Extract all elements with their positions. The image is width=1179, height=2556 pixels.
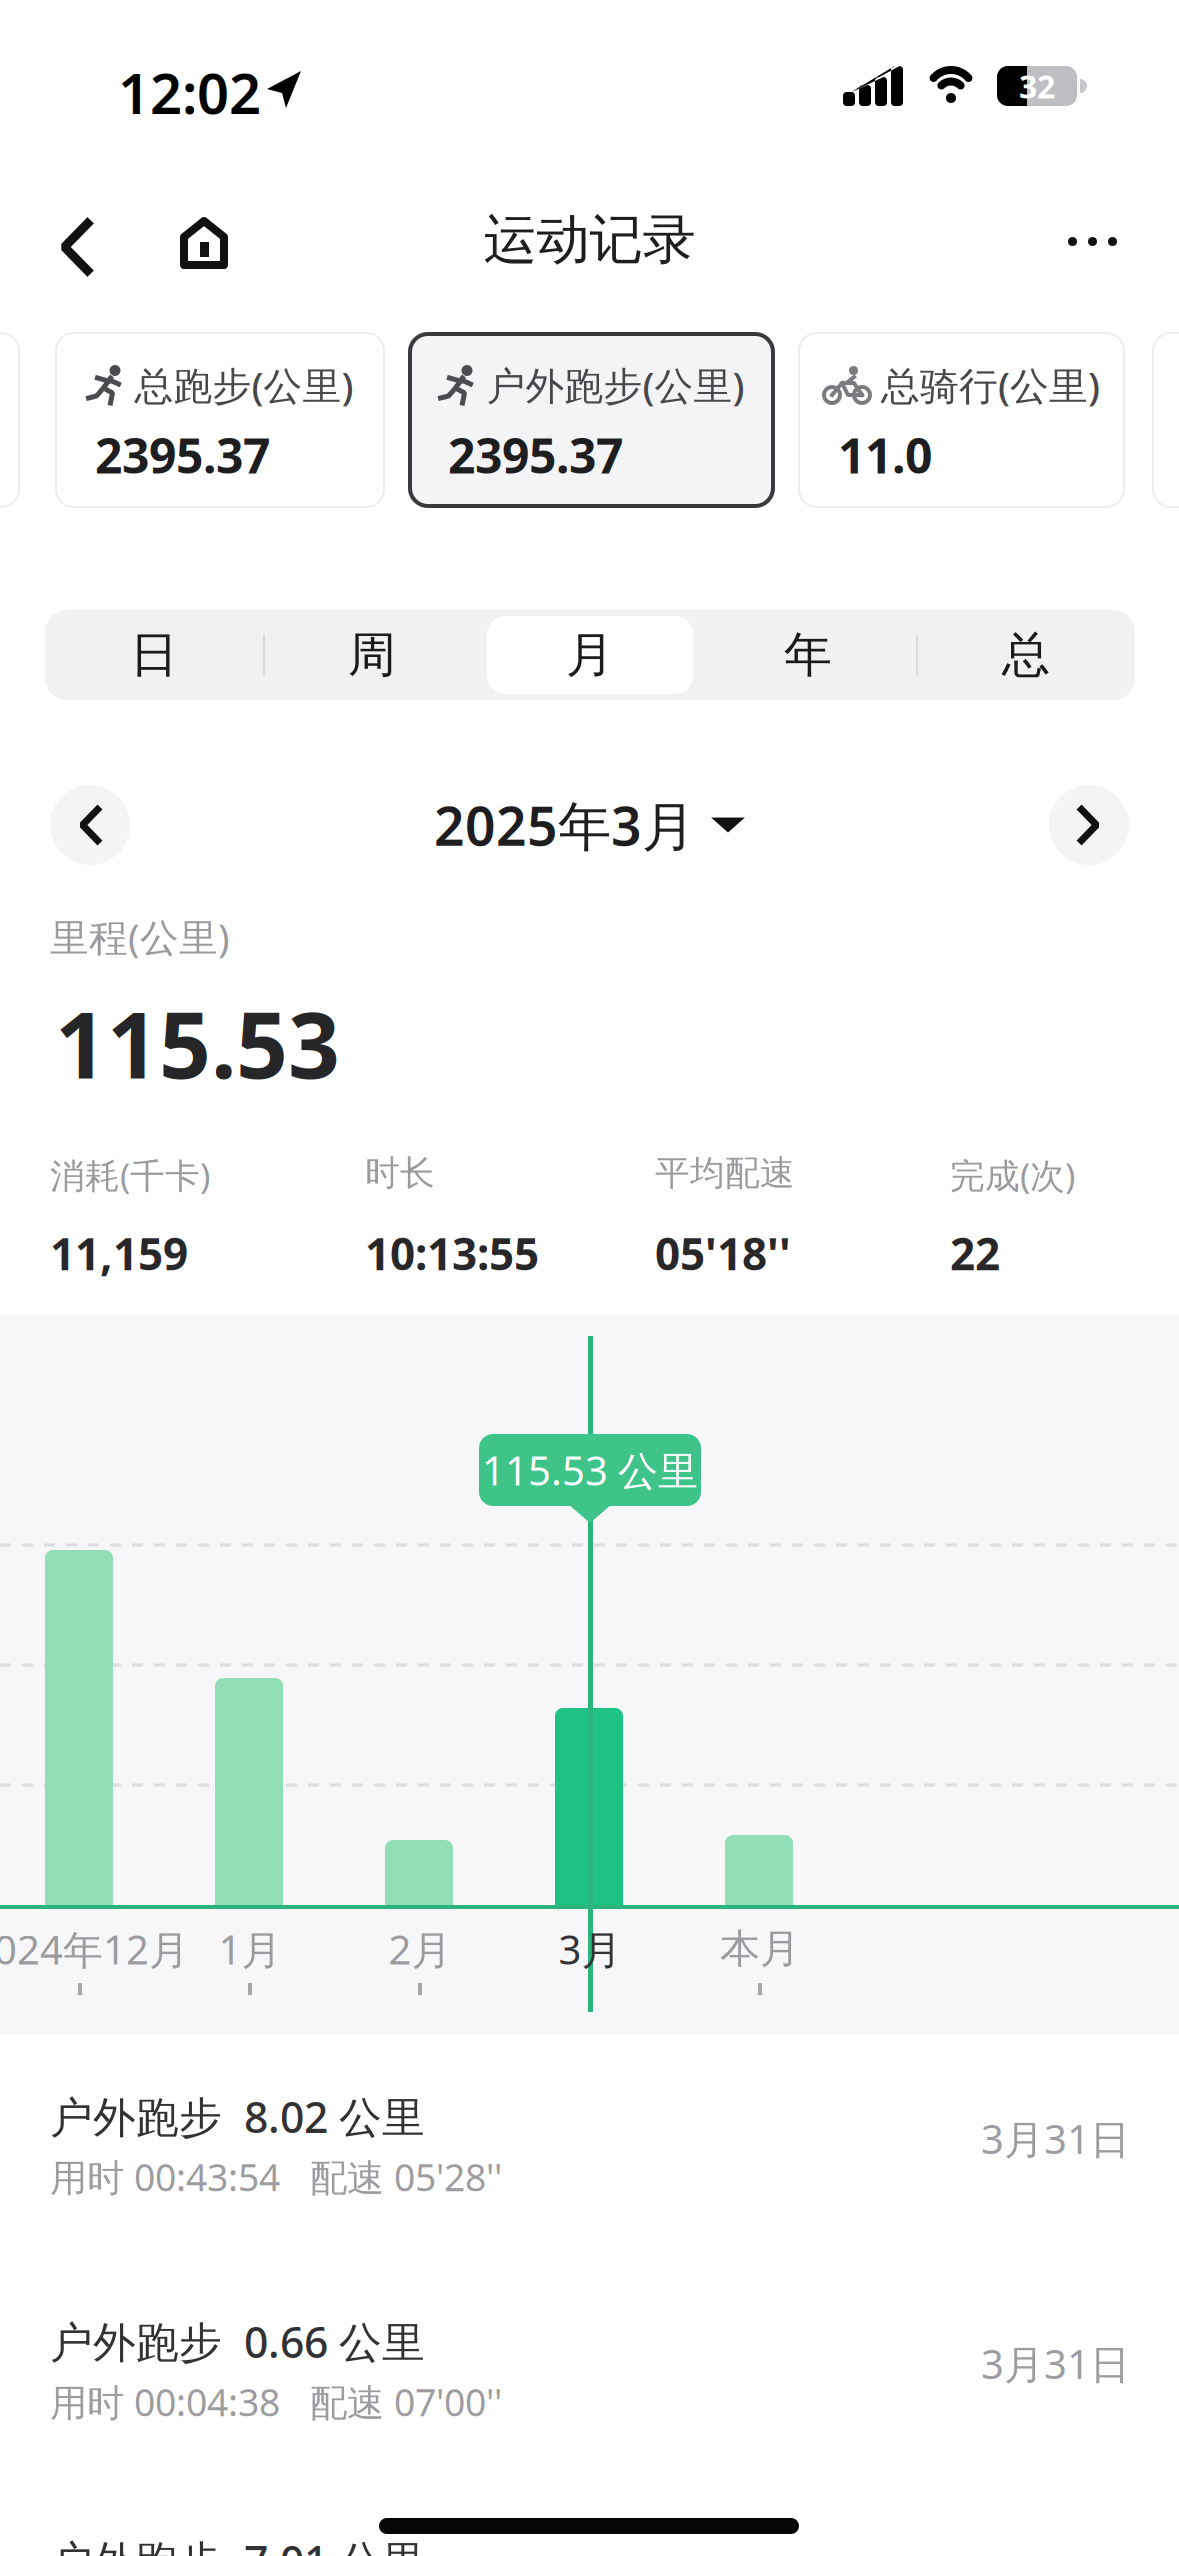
button[interactable]: 2025年3月 — [0, 785, 1179, 865]
staticText: 户外跑步(公里) — [486, 359, 744, 411]
staticText: 周 — [348, 625, 396, 684]
staticText: 10:13:55 — [365, 1224, 539, 1282]
staticText: 1月 — [218, 1922, 281, 1975]
button[interactable]: 下个月 — [1049, 785, 1129, 865]
button[interactable]: 更多 — [1050, 219, 1135, 264]
button[interactable]: 上个月 — [50, 785, 130, 865]
button[interactable]: 总 — [917, 610, 1135, 700]
staticText: 115.53 公里 — [482, 1443, 698, 1496]
staticText: 用时 00:43:54 配速 05'28'' — [50, 2152, 502, 2202]
button[interactable]: 日 — [45, 610, 263, 700]
staticText: 115.53 — [55, 983, 340, 1103]
staticText: 3月 — [558, 1922, 621, 1975]
button[interactable]: 总骑行(公里) — [798, 332, 1125, 508]
staticText: 3月31日 — [981, 2337, 1130, 2390]
staticText: 22 — [950, 1224, 1000, 1282]
staticText: 2025年3月 — [434, 790, 695, 860]
button[interactable]: 月 — [481, 610, 699, 700]
staticText: 12:02 — [118, 55, 261, 129]
staticText: 户外跑步 0.66 公里 — [50, 2313, 425, 2370]
staticText: 用时 00:04:38 配速 07'00'' — [50, 2377, 502, 2427]
staticText: 2月 — [388, 1922, 451, 1975]
button[interactable]: 返回 — [42, 201, 110, 293]
staticText: 月 — [566, 625, 614, 684]
button[interactable]: 户外跑步(公里) — [408, 332, 775, 508]
staticText: 完成(次) — [950, 1152, 1075, 1198]
staticText: 3月31日 — [981, 2112, 1130, 2165]
staticText: 消耗(千卡) — [50, 1152, 210, 1198]
staticText: 总骑行(公里) — [881, 359, 1100, 411]
button[interactable]: 周 — [263, 610, 481, 700]
button[interactable]: 户外跑步 0.66 公里 — [0, 2313, 1179, 2453]
staticText: 本月 — [720, 1924, 800, 1973]
staticText: 05'18'' — [655, 1224, 791, 1282]
staticText: 总 — [1002, 625, 1050, 684]
staticText: 运动记录 — [483, 207, 695, 272]
staticText: 日 — [130, 625, 178, 684]
staticText: 里程(公里) — [50, 911, 230, 962]
staticText: 总跑步(公里) — [134, 359, 353, 411]
button[interactable]: 户外跑步 8.02 公里 — [0, 2088, 1179, 2228]
staticText: 11,159 — [50, 1224, 188, 1282]
staticText: 平均配速 — [655, 1152, 795, 1195]
staticText: 2395.37 — [95, 423, 270, 487]
staticText: 户外跑步 8.02 公里 — [50, 2088, 425, 2145]
staticText: 2395.37 — [448, 423, 623, 487]
staticText: 11.0 — [838, 423, 932, 487]
button[interactable]: 年 — [699, 610, 917, 700]
button[interactable]: 主页 — [166, 203, 242, 283]
staticText: 时长 — [365, 1152, 435, 1195]
staticText: 户外跑步 7.01 公里 — [50, 2532, 425, 2556]
button[interactable]: 总跑步(公里) — [55, 332, 385, 508]
staticText: 2024年12月 — [0, 1922, 189, 1975]
staticText: 年 — [784, 625, 832, 684]
staticText: 32 — [1019, 65, 1055, 107]
